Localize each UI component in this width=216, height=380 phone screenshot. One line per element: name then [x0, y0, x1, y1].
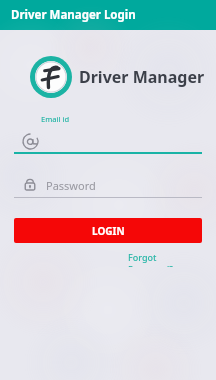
other: Email	[22, 133, 39, 150]
staticText: Email id	[41, 114, 70, 124]
button[interactable]: Email	[14, 128, 202, 154]
staticText: LOGIN	[92, 224, 125, 238]
other: Password	[23, 178, 37, 192]
staticText: Password	[46, 178, 96, 193]
staticText: Driver Manager Login	[11, 7, 136, 23]
staticText: Forgot Password?	[128, 251, 202, 267]
button[interactable]: LOGIN	[14, 218, 202, 243]
button[interactable]: Forgot Password?	[128, 251, 202, 267]
staticText: Driver Manager	[79, 66, 205, 88]
button[interactable]: Password	[14, 173, 202, 197]
